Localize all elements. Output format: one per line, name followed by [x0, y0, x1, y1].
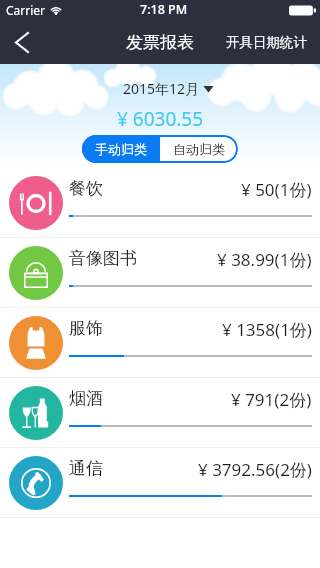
staticText: 2015年12月: [123, 79, 200, 98]
button[interactable]: 自动归类: [160, 135, 238, 163]
staticText: 手动归类: [95, 141, 147, 157]
staticText: Carrier: [6, 2, 46, 18]
button[interactable]: 烟酒: [0, 378, 320, 448]
staticText: 自动归类: [173, 141, 225, 157]
staticText: 7:18 PM: [140, 1, 188, 18]
staticText: 服饰: [69, 318, 103, 339]
staticText: ¥ 38.99(1份): [217, 248, 312, 271]
button[interactable]: Back: [0, 20, 44, 64]
staticText: ¥ 791(2份): [231, 388, 312, 411]
button[interactable]: 餐饮: [0, 168, 320, 238]
staticText: ¥ 3792.56(2份): [198, 458, 312, 481]
staticText: 通信: [69, 458, 103, 479]
staticText: ¥ 1358(1份): [222, 318, 312, 341]
staticText: 音像图书: [69, 248, 137, 269]
button[interactable]: 服饰: [0, 308, 320, 378]
button[interactable]: 通信: [0, 448, 320, 518]
staticText: 开具日期统计: [226, 34, 307, 51]
staticText: ¥ 6030.55: [117, 106, 204, 132]
button[interactable]: 音像图书: [0, 238, 320, 308]
button[interactable]: 手动归类: [82, 135, 160, 163]
staticText: 烟酒: [69, 388, 103, 409]
button[interactable]: 开具日期统计: [220, 20, 320, 64]
button[interactable]: 2015年12月: [123, 79, 214, 98]
staticText: 发票报表: [126, 32, 194, 53]
staticText: ¥ 50(1份): [241, 178, 312, 201]
staticText: 餐饮: [69, 178, 103, 199]
